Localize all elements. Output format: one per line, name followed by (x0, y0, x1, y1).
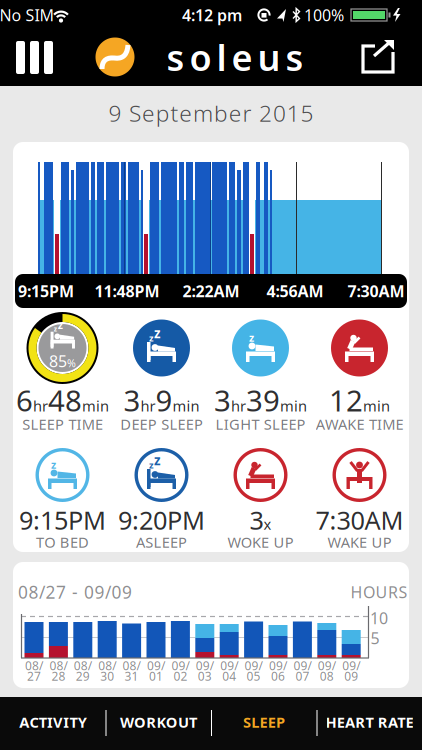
staticText: SLEEP TIME (22, 414, 103, 434)
staticText: 3x (249, 503, 271, 537)
staticText: 7:30AM (315, 503, 403, 537)
staticText: 08/ (49, 657, 67, 673)
staticText: 10 (370, 607, 388, 629)
staticText: 08/ (74, 657, 92, 673)
staticText: 7:30AM (347, 280, 404, 302)
staticText: 5 (370, 627, 379, 649)
staticText: 08/27 - 09/09 (18, 580, 132, 603)
staticText: 9:15PM (18, 280, 74, 302)
staticText: 09/ (269, 657, 287, 673)
staticText: WORKOUT (120, 712, 197, 732)
staticText: z (58, 318, 63, 332)
staticText: 09/ (220, 657, 238, 673)
staticText: 3hr9min (123, 380, 199, 419)
staticText: 06 (271, 668, 285, 684)
staticText: 27 (27, 668, 41, 684)
staticText: WAKE UP (327, 532, 391, 552)
staticText: ASLEEP (136, 532, 187, 552)
staticText: 09/ (147, 657, 165, 673)
staticText: z (154, 324, 161, 342)
staticText: 12min (329, 380, 390, 419)
staticText: No SIM (0, 4, 54, 26)
staticText: 09/ (318, 657, 336, 673)
staticText: WOKE UP (227, 532, 293, 552)
staticText: 08/ (98, 657, 116, 673)
staticText: z (149, 459, 154, 471)
staticText: 04 (222, 668, 236, 684)
staticText: 02 (173, 668, 187, 684)
staticText: DEEP SLEEP (120, 414, 203, 434)
staticText: 28 (51, 668, 65, 684)
staticText: 08 (320, 668, 334, 684)
staticText: 100% (304, 4, 344, 26)
staticText: z (54, 325, 57, 333)
staticText: 29 (76, 668, 90, 684)
staticText: LIGHT SLEEP (216, 414, 305, 434)
staticText: 01 (149, 668, 163, 684)
staticText: 08/ (25, 657, 43, 673)
staticText: HEART RATE (326, 712, 413, 732)
staticText: z (149, 332, 154, 344)
staticText: 09/ (245, 657, 263, 673)
staticText: z (154, 451, 161, 469)
staticText: 11:48PM (94, 280, 159, 302)
staticText: 9:15PM (19, 503, 106, 537)
staticText: z (249, 330, 254, 345)
staticText: 08/ (123, 657, 141, 673)
staticText: 03 (198, 668, 212, 684)
staticText: 09/ (293, 657, 311, 673)
staticText: 4:12 pm (182, 4, 242, 26)
staticText: 09/ (196, 657, 214, 673)
staticText: z (51, 457, 56, 472)
staticText: 09/ (342, 657, 360, 673)
staticText: 05 (247, 668, 261, 684)
staticText: 31 (125, 668, 139, 684)
staticText: 9 September 2015 (108, 98, 313, 128)
staticText: 4:56AM (266, 280, 323, 302)
staticText: 09/ (171, 657, 189, 673)
staticText: SLEEP (243, 712, 285, 732)
staticText: soleus (166, 33, 303, 81)
staticText: AWAKE TIME (316, 414, 403, 434)
staticText: TO BED (36, 532, 89, 552)
staticText: ACTIVITY (19, 712, 87, 732)
staticText: 3hr39min (214, 380, 307, 419)
staticText: 85% (49, 350, 76, 372)
staticText: HOURS (350, 581, 407, 603)
staticText: 07 (295, 668, 309, 684)
staticText: 2:22AM (182, 280, 239, 302)
staticText: 9:20PM (118, 503, 205, 537)
staticText: 09 (344, 668, 358, 684)
staticText: 6hr48min (16, 380, 109, 419)
staticText: 30 (100, 668, 114, 684)
